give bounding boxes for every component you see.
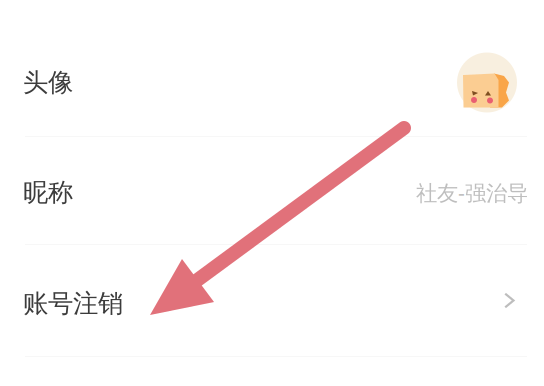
staticText: 昵称 (23, 177, 73, 208)
staticText: 头像 (23, 67, 73, 98)
button[interactable]: 账号注销 (0, 245, 544, 356)
staticText: 账号注销 (23, 288, 123, 319)
button[interactable]: 昵称 (0, 137, 544, 244)
button[interactable]: 头像 (0, 29, 544, 136)
staticText: 社友-强治导 (416, 178, 528, 207)
